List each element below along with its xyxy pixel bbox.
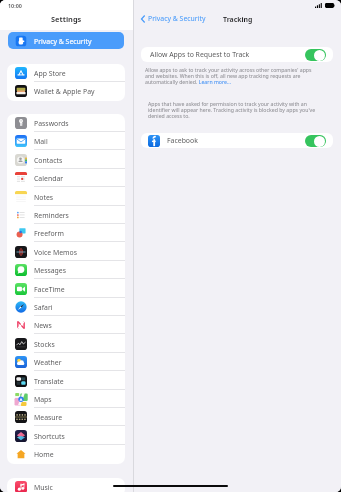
staticText: Voice Memos: [34, 248, 77, 257]
button[interactable]: Home: [7, 445, 125, 463]
staticText: Tracking: [223, 15, 253, 24]
button[interactable]: Toggle switch: [305, 135, 326, 147]
staticText: Reminders: [34, 211, 69, 220]
button[interactable]: Weather: [7, 353, 125, 371]
staticText: Privacy & Security: [34, 37, 92, 46]
staticText: Maps: [34, 395, 52, 404]
staticText: Freeform: [34, 229, 64, 238]
button[interactable]: FaceTime: [7, 280, 125, 298]
button[interactable]: Safari: [7, 298, 125, 316]
button[interactable]: Voice Memos: [7, 243, 125, 261]
button[interactable]: Toggle switch: [305, 49, 326, 61]
staticText: Allow Apps to Request to Track: [150, 50, 250, 59]
staticText: Allow apps to ask to track your activity…: [145, 66, 319, 85]
staticText: Facebook: [167, 136, 198, 145]
button[interactable]: Passwords: [7, 114, 125, 132]
button[interactable]: Messages: [7, 261, 125, 279]
staticText: Passwords: [34, 119, 69, 128]
staticText: Notes: [34, 193, 54, 202]
staticText: Stocks: [34, 340, 55, 349]
button[interactable]: Translate: [7, 372, 125, 390]
button[interactable]: Notes: [7, 188, 125, 206]
staticText: Apps that have asked for permission to t…: [148, 100, 320, 119]
staticText: Translate: [34, 377, 64, 386]
button[interactable]: Maps: [7, 390, 125, 408]
staticText: Home: [34, 450, 54, 459]
staticText: Messages: [34, 266, 67, 275]
button[interactable]: Contacts: [7, 151, 125, 169]
button[interactable]: Measure: [7, 408, 125, 426]
staticText: Measure: [34, 413, 63, 422]
button[interactable]: Allow Apps to Request to Track: [141, 47, 333, 62]
button[interactable]: Wallet & Apple Pay: [7, 82, 125, 100]
button[interactable]: Calendar: [7, 169, 125, 187]
staticText: Safari: [34, 303, 53, 312]
button[interactable]: Shortcuts: [7, 427, 125, 445]
staticText: Settings: [51, 14, 82, 24]
button[interactable]: Stocks: [7, 335, 125, 353]
staticText: Wallet & Apple Pay: [34, 87, 95, 96]
staticText: Contacts: [34, 156, 63, 165]
staticText: Calendar: [34, 174, 64, 183]
staticText: Shortcuts: [34, 432, 65, 441]
button[interactable]: Facebook: [141, 133, 333, 148]
button[interactable]: Privacy & Security: [8, 32, 124, 49]
button[interactable]: News: [7, 316, 125, 334]
staticText: Privacy & Security: [148, 14, 206, 23]
button[interactable]: Mail: [7, 132, 125, 150]
staticText: Music: [34, 483, 53, 492]
staticText: FaceTime: [34, 285, 65, 294]
staticText: Weather: [34, 358, 62, 367]
button[interactable]: Music: [7, 478, 125, 492]
staticText: News: [34, 321, 52, 330]
button[interactable]: Freeform: [7, 224, 125, 242]
staticText: Mail: [34, 137, 48, 146]
staticText: App Store: [34, 69, 66, 78]
button[interactable]: App Store: [7, 64, 125, 82]
staticText: 10:00: [8, 2, 22, 9]
button[interactable]: Privacy & Security: [141, 13, 206, 24]
button[interactable]: Reminders: [7, 206, 125, 224]
